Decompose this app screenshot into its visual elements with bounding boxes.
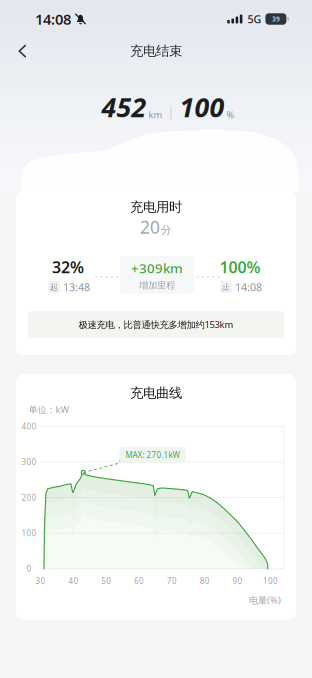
staticText: 13:48 xyxy=(63,280,90,294)
staticText: % xyxy=(226,108,234,121)
staticText: 30 xyxy=(36,576,46,586)
staticText: 32% xyxy=(52,256,84,278)
staticText: 400 xyxy=(21,421,36,432)
staticText: 20 xyxy=(140,215,160,238)
staticText: 90 xyxy=(233,576,243,586)
staticText: 60 xyxy=(134,576,144,586)
staticText: +309km xyxy=(131,259,183,277)
staticText: 40 xyxy=(68,576,78,586)
staticText: 452 xyxy=(101,89,146,125)
staticText: 14:08 xyxy=(235,280,262,294)
staticText: 0 xyxy=(26,563,31,574)
staticText: 100 xyxy=(179,89,224,125)
staticText: 止 xyxy=(222,282,230,292)
staticText: 充电曲线 xyxy=(130,385,182,401)
staticText: MAX: 270.1kW xyxy=(125,450,179,460)
staticText: 极速充电，比普通快充多增加约153km xyxy=(78,318,233,331)
button[interactable]: Back xyxy=(0,34,37,67)
staticText: 70 xyxy=(167,576,177,586)
staticText: 充电结束 xyxy=(130,43,182,59)
staticText: 分 xyxy=(161,223,172,236)
staticText: 增加里程 xyxy=(139,280,175,291)
staticText: 50 xyxy=(101,576,111,586)
staticText: 5G xyxy=(247,12,261,26)
staticText: 100 xyxy=(263,576,278,586)
staticText: 14:08 xyxy=(35,9,71,29)
staticText: 300 xyxy=(21,457,36,467)
staticText: 起 xyxy=(50,282,58,292)
staticText: 单位：kW xyxy=(28,403,69,416)
staticText: 电量(%) xyxy=(249,594,281,606)
staticText: 200 xyxy=(21,492,36,503)
staticText: 充电用时 xyxy=(130,199,182,215)
staticText: 100% xyxy=(219,256,260,278)
staticText: km xyxy=(148,108,162,121)
staticText: 80 xyxy=(200,576,210,586)
staticText: 39 xyxy=(272,15,280,23)
staticText: 100 xyxy=(21,528,36,538)
